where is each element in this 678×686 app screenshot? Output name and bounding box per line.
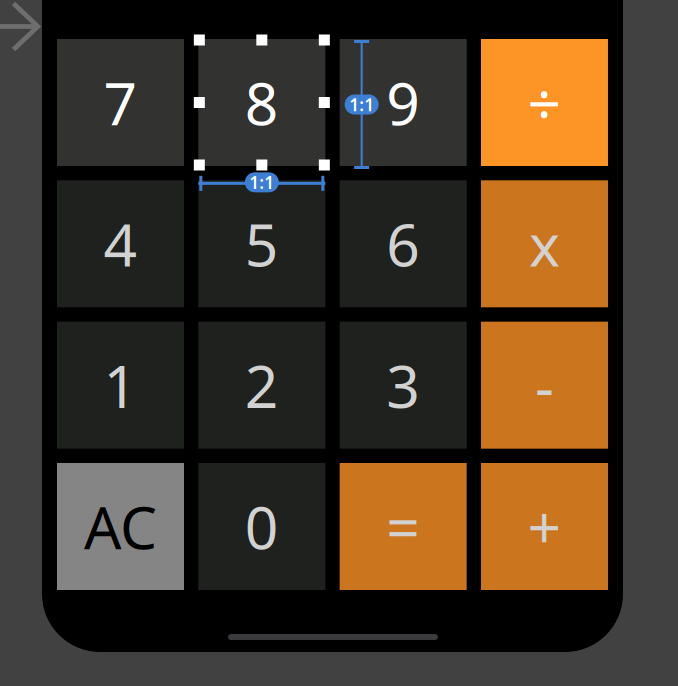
- staticText: 1:1: [249, 171, 274, 194]
- staticText: 8: [245, 63, 279, 141]
- staticText: ÷: [527, 63, 561, 141]
- button[interactable]: 9: [340, 39, 467, 166]
- button[interactable]: Divide: [481, 39, 608, 166]
- button[interactable]: Next: [0, 0, 46, 52]
- button[interactable]: All Clear: [57, 463, 184, 590]
- button[interactable]: 3: [340, 322, 467, 449]
- staticText: AC: [84, 487, 157, 565]
- staticText: 2: [245, 346, 279, 424]
- staticText: 3: [386, 346, 420, 424]
- staticText: 1: [103, 346, 137, 424]
- staticText: +: [527, 487, 561, 565]
- button[interactable]: 1: [57, 322, 184, 449]
- button[interactable]: 7: [57, 39, 184, 166]
- button[interactable]: Equals: [340, 463, 467, 590]
- button[interactable]: 6: [340, 180, 467, 307]
- staticText: x: [529, 205, 560, 283]
- staticText: 0: [245, 487, 279, 565]
- button[interactable]: Multiply: [481, 180, 608, 307]
- staticText: 6: [386, 205, 420, 283]
- staticText: 1:1: [349, 93, 374, 116]
- staticText: 4: [103, 205, 137, 283]
- button[interactable]: 2: [198, 322, 325, 449]
- staticText: 9: [386, 63, 420, 141]
- button[interactable]: Add: [481, 463, 608, 590]
- button[interactable]: Subtract: [481, 322, 608, 449]
- button[interactable]: 4: [57, 180, 184, 307]
- button[interactable]: 0: [198, 463, 325, 590]
- button[interactable]: 5: [198, 180, 325, 307]
- staticText: 5: [245, 205, 279, 283]
- staticText: 7: [103, 63, 137, 141]
- staticText: -: [535, 346, 554, 424]
- button[interactable]: 8: [198, 39, 325, 166]
- staticText: =: [386, 487, 420, 565]
